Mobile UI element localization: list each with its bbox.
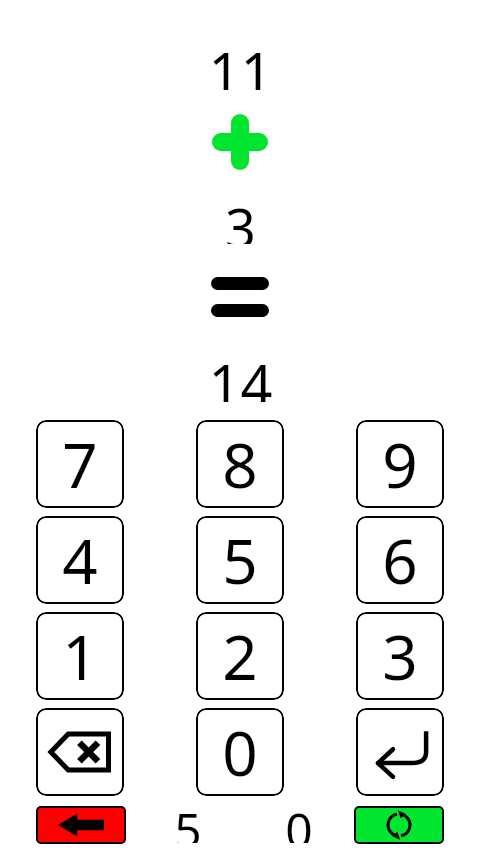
button[interactable]: 1 bbox=[36, 612, 124, 700]
staticText: 14 bbox=[208, 346, 273, 402]
button[interactable]: 7 bbox=[36, 420, 124, 508]
staticText: 6 bbox=[382, 518, 418, 602]
button[interactable]: 0 bbox=[196, 708, 284, 796]
button[interactable]: Restart bbox=[354, 806, 444, 844]
staticText: 0 bbox=[222, 710, 258, 794]
staticText: 0 bbox=[285, 797, 313, 843]
button[interactable]: 5 bbox=[196, 516, 284, 604]
button[interactable]: 4 bbox=[36, 516, 124, 604]
button[interactable]: Enter bbox=[356, 708, 444, 796]
staticText: 7 bbox=[62, 422, 98, 506]
button[interactable]: 8 bbox=[196, 420, 284, 508]
staticText: 1 bbox=[62, 614, 98, 698]
staticText: 11 bbox=[208, 34, 273, 90]
staticText: 4 bbox=[62, 518, 98, 602]
button[interactable]: 3 bbox=[356, 612, 444, 700]
button[interactable]: 6 bbox=[356, 516, 444, 604]
button[interactable]: 2 bbox=[196, 612, 284, 700]
staticText: 8 bbox=[222, 422, 258, 506]
staticText: 5 bbox=[222, 518, 258, 602]
button[interactable]: Backspace bbox=[36, 708, 124, 796]
staticText: 5 bbox=[174, 797, 202, 843]
button[interactable]: Back bbox=[36, 806, 126, 844]
button[interactable]: 9 bbox=[356, 420, 444, 508]
staticText: 3 bbox=[382, 614, 418, 698]
staticText: 9 bbox=[382, 422, 418, 506]
staticText: 2 bbox=[222, 614, 258, 698]
staticText: 3 bbox=[225, 190, 256, 244]
